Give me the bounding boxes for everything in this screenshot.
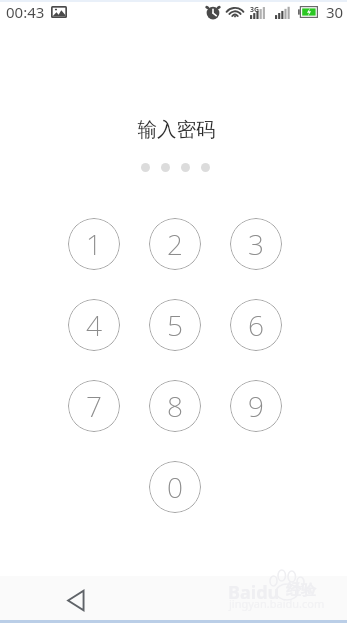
staticText: 6 [248, 306, 264, 344]
button[interactable]: 3 [230, 218, 282, 270]
button[interactable]: 1 [68, 218, 120, 270]
staticText: 2 [167, 225, 183, 263]
button[interactable]: 4 [68, 299, 120, 351]
staticText: 5 [167, 306, 183, 344]
button[interactable]: 2 [149, 218, 201, 270]
staticText: 输入密码 [6, 117, 347, 142]
button[interactable]: 7 [68, 380, 120, 432]
staticText: 8 [167, 387, 183, 425]
staticText: 经验 [286, 581, 316, 600]
staticText: 4 [86, 306, 102, 344]
button[interactable]: 0 [149, 461, 201, 513]
staticText: 7 [86, 387, 102, 425]
button[interactable]: 8 [149, 380, 201, 432]
staticText: 3G [250, 5, 260, 15]
staticText: 00:43 [6, 2, 45, 22]
staticText: 9 [248, 387, 264, 425]
staticText: Baidu [228, 580, 280, 605]
button[interactable]: 5 [149, 299, 201, 351]
staticText: 0 [167, 468, 183, 506]
staticText: 1 [86, 225, 102, 263]
button[interactable]: Back [54, 580, 98, 620]
staticText: 30 [326, 2, 344, 22]
button[interactable]: 6 [230, 299, 282, 351]
staticText: jingyan.baidu.com [229, 596, 325, 611]
button[interactable]: 9 [230, 380, 282, 432]
staticText: 3 [248, 225, 264, 263]
